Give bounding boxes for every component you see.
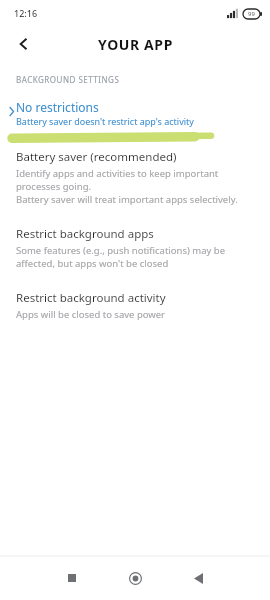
button[interactable]: Restrict background activity — [0, 270, 270, 321]
button[interactable]: Recents — [54, 560, 90, 596]
button[interactable]: Back — [180, 560, 216, 596]
button[interactable]: No restrictions — [0, 99, 270, 127]
staticText: Apps will be closed to save power — [16, 308, 166, 321]
staticText: affected, but apps won't be closed — [16, 257, 169, 270]
staticText: Restrict background apps — [16, 226, 154, 242]
staticText: 12:16 — [14, 7, 38, 19]
staticText: YOUR APP — [98, 35, 173, 54]
button[interactable]: Battery saver (recommended) — [0, 143, 270, 206]
staticText: No restrictions — [16, 99, 99, 115]
staticText: Battery saver doesn't restrict app's act… — [16, 115, 194, 127]
staticText: Identify apps and activities to keep imp… — [16, 167, 219, 180]
staticText: Restrict background activity — [16, 290, 166, 306]
staticText: Battery saver (recommended) — [16, 149, 177, 165]
staticText: processes going. — [16, 180, 92, 193]
button[interactable]: Back — [8, 28, 40, 60]
staticText: 99 — [248, 10, 255, 18]
staticText: Battery saver will treat important apps … — [16, 193, 238, 206]
button[interactable]: Home — [117, 560, 153, 596]
staticText: Some features (e.g., push notifications)… — [16, 244, 226, 257]
button[interactable]: Restrict background apps — [0, 206, 270, 270]
staticText: BACKGROUND SETTINGS — [16, 74, 120, 85]
